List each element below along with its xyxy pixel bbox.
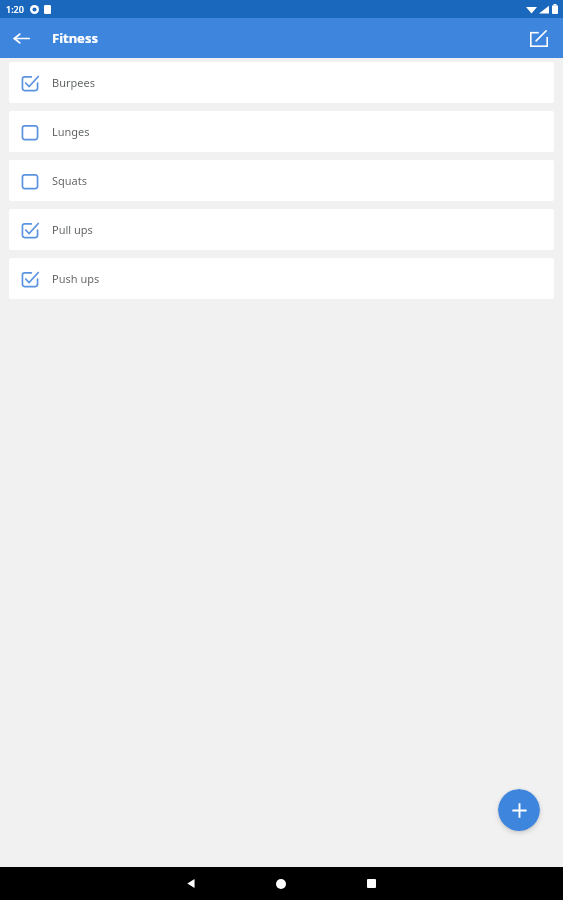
staticText: Lunges (52, 124, 90, 139)
button[interactable]: Back (8, 25, 34, 51)
staticText: Pull ups (52, 222, 93, 237)
button[interactable]: Home (258, 867, 304, 900)
button[interactable]: Push ups (9, 258, 554, 299)
button[interactable]: Burpees (9, 62, 554, 103)
staticText: Squats (52, 173, 88, 188)
button[interactable]: Lunges (9, 111, 554, 152)
button[interactable]: Edit (525, 24, 553, 52)
staticText: Fitness (52, 29, 98, 47)
button[interactable]: Recent apps (348, 867, 394, 900)
staticText: 1:20 (6, 3, 24, 15)
button[interactable]: Pull ups (9, 209, 554, 250)
button[interactable]: Squats (9, 160, 554, 201)
staticText: Burpees (52, 75, 95, 90)
staticText: Push ups (52, 271, 100, 286)
button[interactable]: Add (498, 789, 540, 831)
button[interactable]: Back (168, 867, 214, 900)
